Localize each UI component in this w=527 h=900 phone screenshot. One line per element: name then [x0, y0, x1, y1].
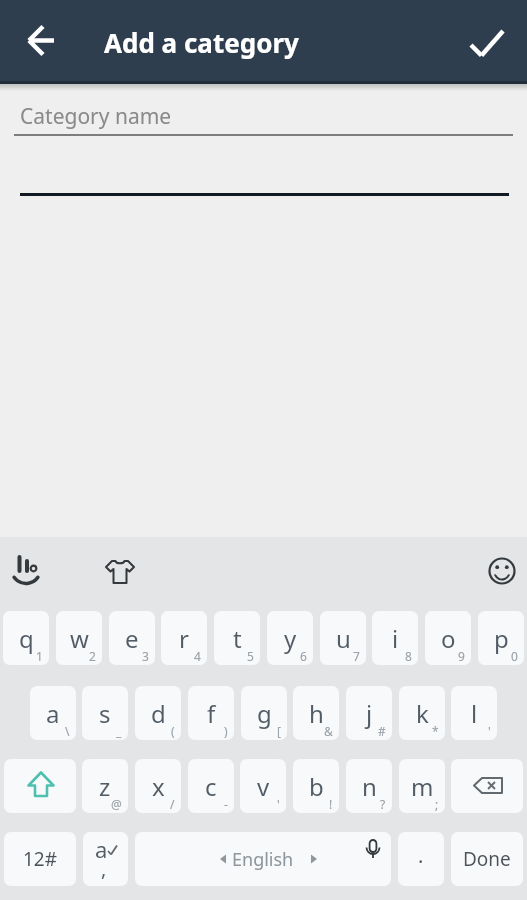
staticText: i: [392, 622, 399, 655]
staticText: t: [233, 622, 242, 655]
staticText: ;: [435, 796, 439, 812]
button[interactable]: r: [161, 611, 207, 665]
button[interactable]: [98, 548, 142, 592]
button[interactable]: English: [135, 832, 391, 886]
button[interactable]: [18, 17, 66, 65]
button[interactable]: b: [293, 759, 339, 813]
button[interactable]: e: [109, 611, 155, 665]
staticText: l: [471, 697, 478, 730]
staticText: g: [257, 697, 272, 730]
staticText: h: [309, 697, 324, 730]
staticText: o: [441, 622, 456, 655]
button[interactable]: o: [425, 611, 471, 665]
staticText: ': [277, 796, 280, 812]
button[interactable]: u: [320, 611, 366, 665]
button[interactable]: [451, 759, 523, 813]
button[interactable]: n: [346, 759, 392, 813]
staticText: /: [170, 796, 175, 812]
staticText: #: [378, 723, 386, 739]
button[interactable]: q: [3, 611, 49, 665]
button[interactable]: z: [82, 759, 128, 813]
staticText: p: [494, 622, 509, 655]
staticText: v: [257, 770, 270, 803]
button[interactable]: t: [214, 611, 260, 665]
button[interactable]: 12#: [4, 832, 76, 886]
staticText: \: [65, 723, 70, 739]
staticText: n: [362, 770, 377, 803]
button[interactable]: Category name: [14, 96, 514, 138]
button[interactable]: x: [135, 759, 181, 813]
button[interactable]: d: [135, 686, 181, 740]
staticText: !: [329, 796, 333, 812]
staticText: 7: [353, 648, 360, 664]
button[interactable]: .: [398, 832, 444, 886]
staticText: 12#: [23, 846, 58, 872]
button[interactable]: a: [83, 832, 128, 886]
staticText: (: [171, 723, 175, 739]
staticText: y: [284, 622, 297, 655]
staticText: 9: [458, 648, 465, 664]
staticText: q: [19, 622, 34, 655]
button[interactable]: [480, 549, 524, 593]
staticText: u: [336, 622, 351, 655]
staticText: z: [99, 770, 111, 803]
staticText: [: [277, 723, 281, 739]
staticText: 1: [36, 648, 43, 664]
button[interactable]: l: [451, 686, 497, 740]
staticText: .: [418, 842, 424, 869]
staticText: -: [224, 796, 228, 812]
staticText: x: [152, 770, 165, 803]
staticText: ): [224, 723, 228, 739]
button[interactable]: f: [188, 686, 234, 740]
staticText: e: [125, 622, 139, 655]
staticText: k: [416, 697, 429, 730]
button[interactable]: w: [56, 611, 102, 665]
button[interactable]: h: [293, 686, 339, 740]
staticText: s: [99, 697, 111, 730]
staticText: f: [207, 697, 216, 730]
button[interactable]: j: [346, 686, 392, 740]
button[interactable]: s: [82, 686, 128, 740]
button[interactable]: i: [372, 611, 418, 665]
staticText: 2: [89, 648, 96, 664]
staticText: Done: [463, 846, 511, 872]
staticText: @: [111, 796, 122, 812]
staticText: w: [70, 622, 89, 655]
staticText: &: [324, 723, 333, 739]
button[interactable]: Done: [451, 832, 523, 886]
staticText: m: [411, 770, 434, 803]
staticText: a: [46, 697, 60, 730]
staticText: b: [309, 770, 324, 803]
button[interactable]: c: [188, 759, 234, 813]
staticText: a: [95, 834, 108, 864]
staticText: 0: [511, 648, 518, 664]
staticText: English: [232, 847, 294, 872]
staticText: ': [488, 723, 491, 739]
staticText: _: [116, 723, 122, 739]
button[interactable]: [8, 548, 52, 592]
button[interactable]: y: [267, 611, 313, 665]
button[interactable]: [4, 759, 76, 813]
staticText: 3: [142, 648, 149, 664]
staticText: d: [151, 697, 166, 730]
button[interactable]: g: [241, 686, 287, 740]
button[interactable]: m: [399, 759, 445, 813]
staticText: 5: [247, 648, 254, 664]
button[interactable]: v: [240, 759, 286, 813]
staticText: Category name: [20, 102, 172, 131]
staticText: Add a category: [104, 25, 299, 60]
button[interactable]: p: [478, 611, 524, 665]
staticText: c: [205, 770, 217, 803]
staticText: ,: [101, 855, 107, 882]
staticText: 4: [194, 648, 201, 664]
staticText: r: [179, 622, 189, 655]
button[interactable]: [462, 18, 510, 66]
staticText: j: [366, 697, 373, 730]
button[interactable]: a: [30, 686, 76, 740]
staticText: ?: [380, 796, 386, 812]
staticText: 6: [300, 648, 307, 664]
button[interactable]: k: [399, 686, 445, 740]
staticText: 8: [405, 648, 412, 664]
staticText: *: [432, 723, 439, 739]
